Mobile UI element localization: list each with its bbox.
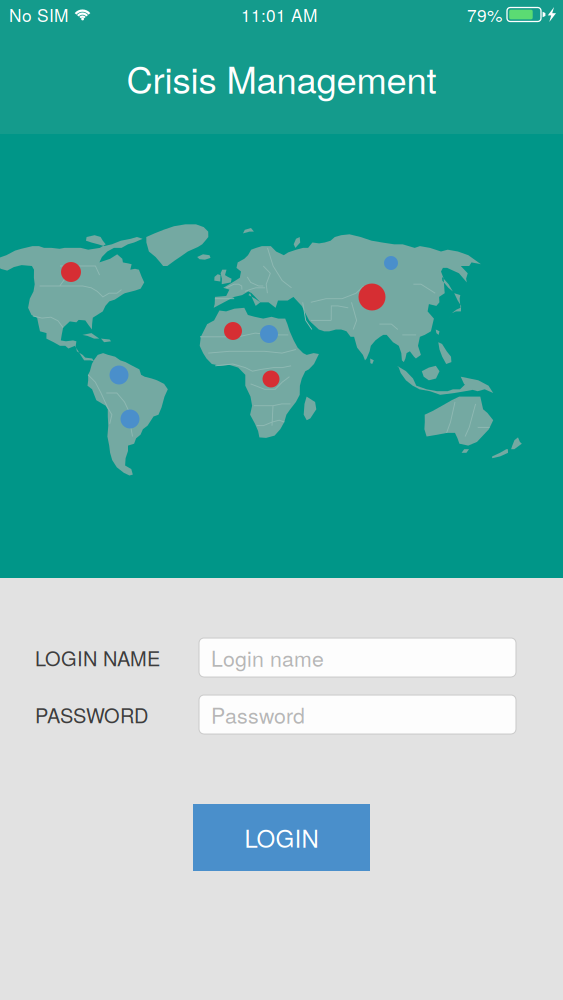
staticText: LOGIN — [244, 820, 318, 855]
staticText: LOGIN NAME — [35, 643, 160, 672]
staticText: Password — [211, 699, 305, 730]
button[interactable]: LOGIN — [193, 804, 370, 871]
staticText: Crisis Management — [126, 52, 436, 104]
button[interactable]: Login name — [199, 638, 516, 677]
staticText: 11:01 AM — [241, 2, 317, 27]
button[interactable]: Password — [199, 695, 516, 734]
staticText: 79% — [467, 2, 502, 27]
staticText: No SIM — [9, 2, 68, 27]
staticText: Login name — [211, 642, 324, 673]
staticText: PASSWORD — [35, 700, 148, 729]
